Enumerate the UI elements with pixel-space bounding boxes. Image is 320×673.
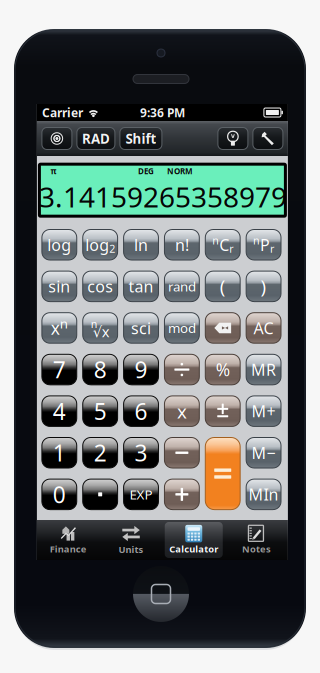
- button[interactable]: [164, 354, 199, 385]
- button[interactable]: cos: [83, 271, 118, 302]
- button[interactable]: Notes: [225, 520, 288, 560]
- staticText: 3.14159265358979: [39, 178, 287, 215]
- staticText: √x: [93, 322, 110, 341]
- staticText: Carrier: [42, 104, 83, 120]
- staticText: 1: [53, 438, 66, 468]
- button[interactable]: [253, 127, 283, 149]
- button[interactable]: 4: [42, 396, 77, 426]
- button[interactable]: sci: [124, 313, 158, 343]
- button[interactable]: RAD: [77, 127, 115, 149]
- button[interactable]: MR: [246, 354, 281, 385]
- staticText: 2: [109, 241, 115, 256]
- button[interactable]: log: [83, 229, 118, 260]
- button[interactable]: [205, 396, 240, 426]
- staticText: 5: [94, 396, 107, 426]
- button[interactable]: M−: [246, 437, 281, 468]
- staticText: log: [47, 234, 71, 255]
- staticText: n: [212, 233, 219, 247]
- button[interactable]: 5: [83, 396, 118, 426]
- staticText: M+: [252, 400, 276, 422]
- staticText: 9:36 PM: [140, 104, 185, 120]
- staticText: Shift: [125, 130, 156, 147]
- button[interactable]: AC: [246, 313, 281, 343]
- staticText: Finance: [50, 543, 87, 555]
- staticText: (: [220, 274, 226, 299]
- staticText: Notes: [242, 543, 271, 555]
- staticText: Units: [119, 543, 144, 556]
- staticText: 7: [53, 354, 66, 385]
- button[interactable]: 0: [42, 479, 77, 510]
- button[interactable]: n: [83, 313, 118, 343]
- button[interactable]: mod: [164, 313, 199, 343]
- staticText: r: [270, 241, 274, 256]
- staticText: cos: [87, 276, 113, 297]
- staticText: 3: [134, 438, 147, 468]
- button[interactable]: log: [42, 229, 77, 260]
- staticText: x: [51, 316, 60, 339]
- staticText: MIn: [249, 484, 279, 505]
- staticText: 4: [53, 396, 66, 426]
- button[interactable]: sin: [42, 271, 77, 302]
- button[interactable]: Shift: [120, 127, 162, 149]
- staticText: rand: [168, 277, 196, 295]
- button[interactable]: (: [205, 271, 240, 302]
- staticText: 6: [134, 396, 147, 426]
- staticText: %: [216, 358, 230, 381]
- button[interactable]: M+: [246, 396, 281, 426]
- button[interactable]: EXP: [124, 479, 158, 510]
- button[interactable]: n: [205, 229, 240, 260]
- staticText: 2: [94, 438, 107, 468]
- staticText: P: [260, 234, 270, 255]
- staticText: π: [50, 166, 56, 176]
- staticText: ): [261, 274, 267, 299]
- button[interactable]: ln: [124, 229, 158, 260]
- button[interactable]: Finance: [37, 520, 100, 560]
- button[interactable]: [164, 437, 199, 468]
- button[interactable]: rand: [164, 271, 199, 302]
- staticText: sci: [131, 317, 151, 338]
- staticText: r: [229, 241, 233, 256]
- staticText: RAD: [82, 130, 110, 147]
- button[interactable]: %: [205, 354, 240, 385]
- staticText: n: [91, 317, 98, 331]
- button[interactable]: 3: [124, 437, 158, 468]
- button[interactable]: [42, 127, 72, 149]
- button[interactable]: [164, 479, 199, 510]
- staticText: mod: [168, 319, 196, 337]
- button[interactable]: 7: [42, 354, 77, 385]
- button[interactable]: x: [42, 313, 77, 343]
- staticText: MR: [251, 359, 276, 380]
- button[interactable]: 8: [83, 354, 118, 385]
- button[interactable]: 2: [83, 437, 118, 468]
- button[interactable]: 9: [124, 354, 158, 385]
- button[interactable]: [205, 313, 240, 343]
- button[interactable]: ): [246, 271, 281, 302]
- button[interactable]: MIn: [246, 479, 281, 510]
- button[interactable]: tan: [124, 271, 158, 302]
- button[interactable]: n!: [164, 229, 199, 260]
- staticText: EXP: [129, 485, 152, 503]
- staticText: ln: [134, 234, 148, 255]
- staticText: NORM: [167, 166, 193, 176]
- staticText: C: [219, 234, 229, 255]
- staticText: n: [60, 314, 68, 332]
- button[interactable]: n: [246, 229, 281, 260]
- button[interactable]: [205, 437, 240, 510]
- button[interactable]: 1: [42, 437, 77, 468]
- button[interactable]: [218, 127, 248, 149]
- staticText: n: [253, 233, 260, 247]
- staticText: x: [177, 399, 187, 424]
- button[interactable]: Units: [100, 520, 162, 560]
- button[interactable]: 6: [124, 396, 158, 426]
- button[interactable]: [83, 479, 118, 510]
- staticText: 0: [53, 479, 66, 509]
- staticText: DEG: [138, 166, 154, 176]
- button[interactable]: Calculator: [162, 520, 225, 560]
- staticText: Calculator: [169, 543, 218, 555]
- staticText: n!: [175, 234, 189, 255]
- staticText: sin: [48, 276, 70, 297]
- staticText: 9: [134, 354, 147, 385]
- button[interactable]: x: [164, 396, 199, 426]
- staticText: M−: [252, 442, 276, 463]
- staticText: log: [85, 234, 109, 255]
